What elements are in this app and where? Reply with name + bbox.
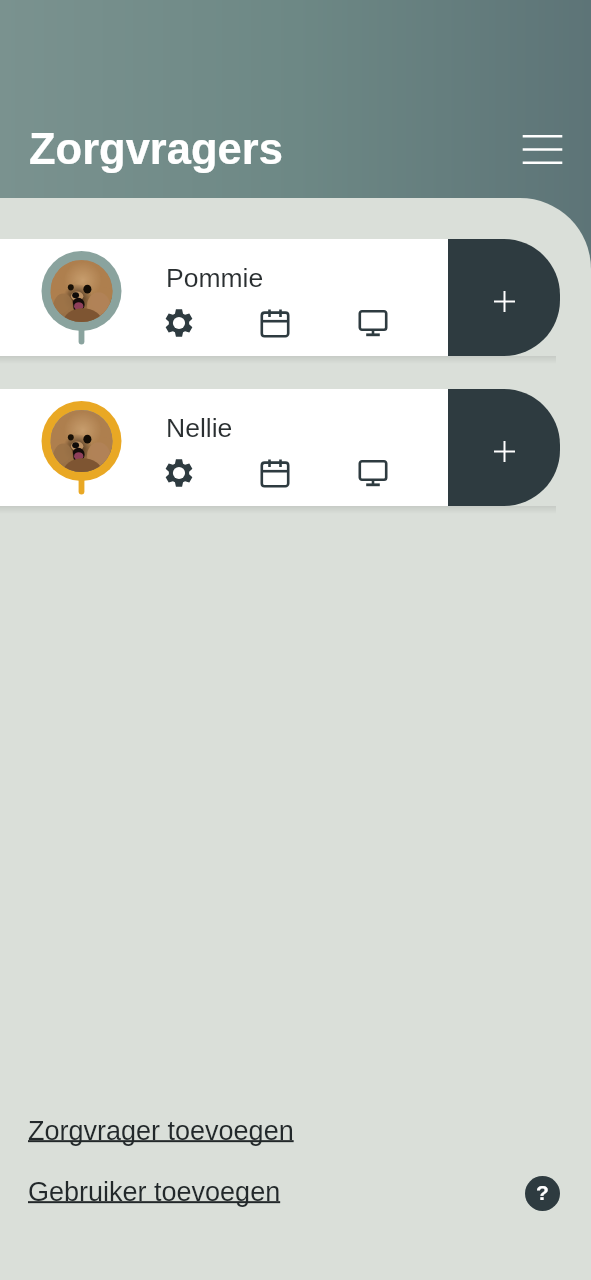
- button[interactable]: Nellie: [0, 389, 448, 506]
- button[interactable]: Gebruiker toevoegen: [28, 1177, 281, 1207]
- staticText: ?: [536, 1181, 549, 1204]
- button[interactable]: Menu: [515, 144, 569, 198]
- button[interactable]: Add: [448, 239, 560, 356]
- button[interactable]: Add: [448, 389, 560, 506]
- staticText: Zorgvragers: [29, 125, 283, 174]
- staticText: Nellie: [166, 413, 233, 443]
- button[interactable]: Instellingen: [158, 452, 200, 494]
- button[interactable]: Pommie: [0, 239, 448, 356]
- button[interactable]: Help: [525, 1176, 560, 1211]
- button[interactable]: Agenda: [254, 302, 296, 344]
- button[interactable]: Agenda: [254, 452, 296, 494]
- button[interactable]: Scherm: [352, 452, 394, 494]
- staticText: Gebruiker toevoegen: [28, 1177, 281, 1207]
- button[interactable]: Zorgvrager toevoegen: [28, 1116, 294, 1146]
- button[interactable]: Scherm: [352, 302, 394, 344]
- button[interactable]: Instellingen: [158, 302, 200, 344]
- staticText: Pommie: [166, 263, 264, 293]
- staticText: Zorgvrager toevoegen: [28, 1116, 294, 1146]
